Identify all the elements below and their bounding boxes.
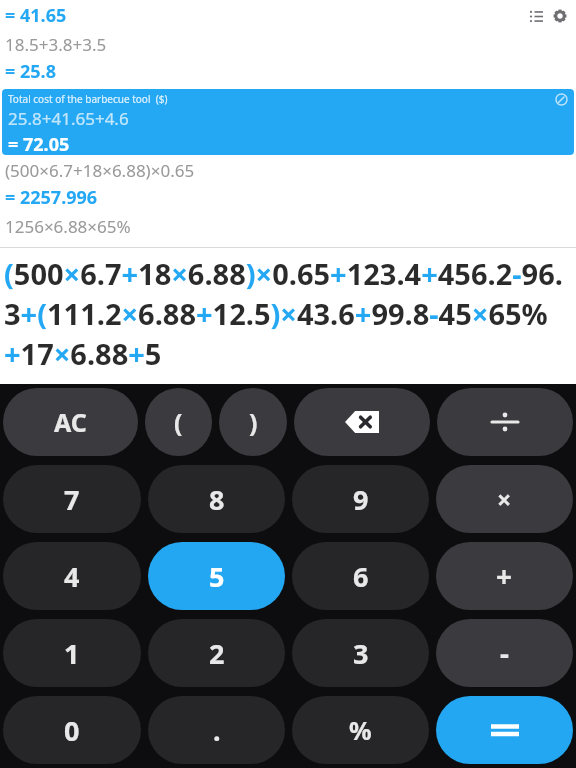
button[interactable]: Divide	[437, 388, 573, 456]
button[interactable]: +	[436, 542, 573, 610]
button[interactable]: Backspace	[294, 388, 430, 456]
staticText: 9	[353, 481, 369, 518]
button[interactable]: ×	[436, 465, 573, 533]
staticText: = 5616.832	[5, 241, 98, 248]
staticText: ×	[497, 482, 512, 516]
staticText: (500×6.7+18×6.88)×0.65+123.4+456.2-96.3+…	[4, 254, 576, 374]
staticText: 3	[353, 635, 369, 672]
button[interactable]: 3	[292, 619, 429, 687]
staticText: Total cost of the barbecue tool ($)	[8, 92, 168, 106]
staticText: 1256×6.88×65%	[5, 215, 131, 238]
button[interactable]: Total cost of the barbecue tool ($)	[2, 89, 574, 155]
button[interactable]: 6	[292, 542, 429, 610]
button[interactable]: 8	[148, 465, 285, 533]
staticText: 5	[209, 558, 225, 595]
staticText: 2	[209, 635, 225, 672]
button[interactable]: %	[292, 696, 429, 764]
staticText: 4	[64, 558, 80, 595]
button[interactable]: .	[148, 696, 285, 764]
button[interactable]: Settings	[550, 6, 570, 26]
button[interactable]: 1	[3, 619, 141, 687]
staticText: 0	[64, 712, 80, 749]
staticText: AC	[54, 405, 87, 439]
staticText: )	[249, 405, 258, 439]
button[interactable]: 0	[3, 696, 141, 764]
button[interactable]: -	[436, 619, 573, 687]
button[interactable]: AC	[3, 388, 138, 456]
staticText: = 2257.996	[5, 185, 98, 210]
button[interactable]: 7	[3, 465, 141, 533]
button[interactable]: )	[219, 388, 287, 456]
staticText: = 72.05	[8, 132, 70, 155]
staticText: %	[349, 713, 372, 747]
button[interactable]: 2	[148, 619, 285, 687]
button[interactable]: 9	[292, 465, 429, 533]
button[interactable]: History list	[526, 6, 546, 26]
button[interactable]: Equals	[436, 696, 573, 764]
staticText: -	[500, 634, 509, 672]
staticText: 1	[64, 635, 80, 672]
staticText: 25.8+41.65+4.6	[8, 107, 129, 130]
staticText: .	[213, 712, 221, 749]
staticText: 6	[353, 558, 369, 595]
staticText: 7	[64, 481, 80, 518]
button[interactable]: 5	[148, 542, 285, 610]
staticText: (500×6.7+18×6.88)×0.65	[5, 159, 195, 182]
staticText: +	[496, 557, 513, 595]
staticText: 18.5+3.8+3.5	[5, 33, 107, 56]
button[interactable]: (	[145, 388, 212, 456]
staticText: = 41.65	[5, 3, 67, 28]
button[interactable]: 4	[3, 542, 141, 610]
staticText: = 25.8	[5, 59, 56, 84]
staticText: 8	[209, 481, 225, 518]
staticText: (	[174, 405, 183, 439]
